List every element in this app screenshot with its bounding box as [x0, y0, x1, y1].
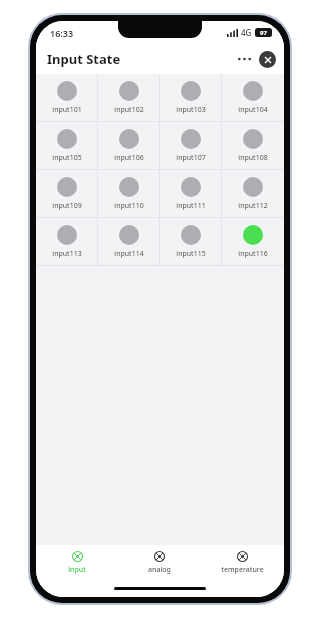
staticText: temperature	[221, 565, 264, 575]
staticText: input114	[114, 249, 144, 259]
button[interactable]: input109	[36, 170, 98, 217]
staticText: input105	[52, 153, 82, 163]
staticText: input106	[114, 153, 144, 163]
staticText: input112	[238, 201, 268, 211]
button[interactable]: input115	[160, 218, 222, 265]
staticText: 97	[260, 29, 267, 37]
button[interactable]: analog	[118, 545, 201, 581]
staticText: analog	[148, 565, 171, 575]
staticText: 4G	[241, 27, 252, 38]
button[interactable]: Close	[259, 51, 276, 68]
staticText: input116	[238, 249, 268, 259]
staticText: input109	[52, 201, 82, 211]
staticText: input103	[176, 105, 206, 115]
button[interactable]: input113	[36, 218, 98, 265]
staticText: input	[68, 565, 86, 575]
button[interactable]: input114	[98, 218, 160, 265]
button[interactable]: input102	[98, 74, 160, 121]
staticText: input102	[114, 105, 144, 115]
staticText: input110	[114, 201, 144, 211]
staticText: 16:33	[50, 27, 74, 39]
button[interactable]: input	[36, 545, 118, 581]
button[interactable]: More options	[234, 49, 254, 69]
button[interactable]: input101	[36, 74, 98, 121]
button[interactable]: input107	[160, 122, 222, 169]
staticText: input101	[52, 105, 82, 115]
button[interactable]: input105	[36, 122, 98, 169]
staticText: input111	[176, 201, 206, 211]
button[interactable]: input110	[98, 170, 160, 217]
button[interactable]: input111	[160, 170, 222, 217]
button[interactable]: input103	[160, 74, 222, 121]
button[interactable]: input116	[222, 218, 284, 265]
button[interactable]: input112	[222, 170, 284, 217]
staticText: input104	[238, 105, 268, 115]
staticText: Input State	[47, 50, 121, 68]
staticText: input107	[176, 153, 206, 163]
button[interactable]: input104	[222, 74, 284, 121]
staticText: input115	[176, 249, 206, 259]
button[interactable]: input106	[98, 122, 160, 169]
staticText: input108	[238, 153, 268, 163]
staticText: input113	[52, 249, 82, 259]
button[interactable]: input108	[222, 122, 284, 169]
button[interactable]: temperature	[201, 545, 284, 581]
